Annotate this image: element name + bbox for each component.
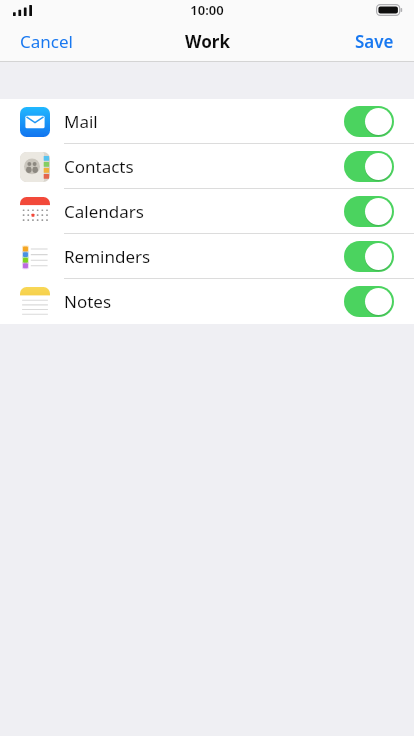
button[interactable]: Reminders — [0, 234, 414, 279]
button[interactable]: Toggle Contacts — [344, 151, 394, 182]
button[interactable]: Toggle Reminders — [344, 241, 394, 272]
button[interactable]: Mail — [0, 99, 414, 144]
staticText: Contacts — [64, 155, 134, 178]
staticText: Notes — [64, 290, 112, 313]
button[interactable]: Cancel — [0, 21, 93, 62]
staticText: Cancel — [20, 30, 73, 53]
button[interactable]: Contacts — [0, 144, 414, 189]
staticText: Calendars — [64, 200, 144, 223]
button[interactable]: Notes — [0, 279, 414, 324]
staticText: Work — [185, 30, 230, 53]
staticText: Save — [355, 30, 394, 53]
button[interactable]: Toggle Notes — [344, 286, 394, 317]
button[interactable]: Toggle Calendars — [344, 196, 394, 227]
staticText: Mail — [64, 110, 98, 133]
button[interactable]: Toggle Mail — [344, 106, 394, 137]
button[interactable]: Calendars — [0, 189, 414, 234]
button[interactable]: Save — [335, 21, 414, 62]
staticText: Reminders — [64, 245, 151, 268]
staticText: 10:00 — [190, 1, 224, 19]
